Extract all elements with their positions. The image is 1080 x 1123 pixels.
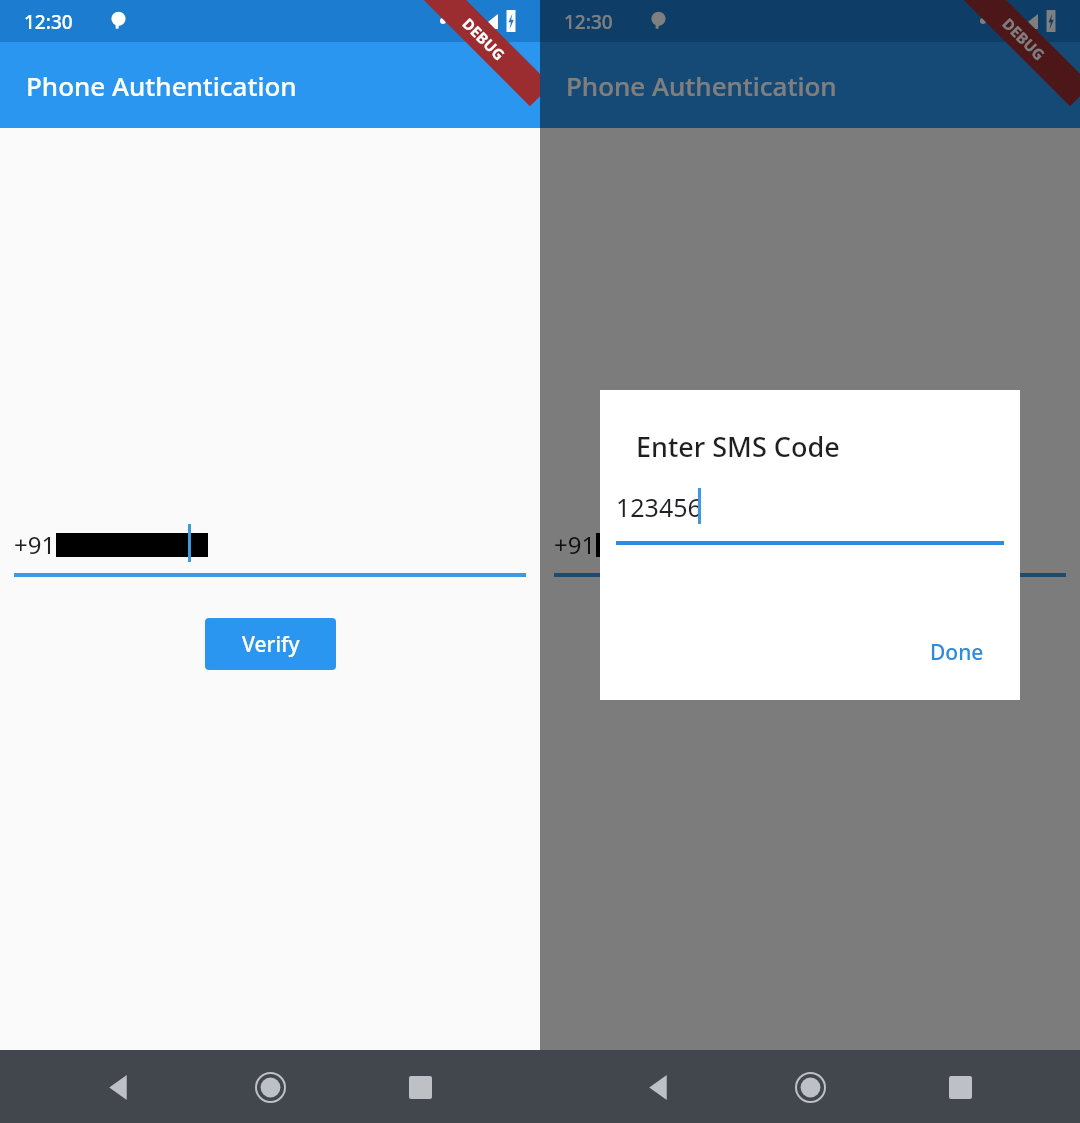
staticText: DEBUG <box>998 13 1049 64</box>
staticText: 12:30 <box>24 9 73 35</box>
button[interactable]: Phone Authentication <box>0 42 540 128</box>
button[interactable]: Home <box>780 1057 840 1117</box>
button[interactable]: Recents <box>930 1057 990 1117</box>
button[interactable]: Phone Authentication <box>540 42 1080 128</box>
button[interactable]: Recents <box>390 1057 450 1117</box>
staticText: Phone Authentication <box>26 68 297 103</box>
staticText: Verify <box>242 630 300 659</box>
button[interactable]: +91 <box>540 524 1080 584</box>
staticText: 123456 <box>616 490 702 524</box>
staticText: DEBUG <box>458 13 509 64</box>
button[interactable]: Done <box>910 630 1004 674</box>
button[interactable]: Back <box>630 1057 690 1117</box>
button[interactable]: Home <box>240 1057 300 1117</box>
button[interactable]: +91 <box>0 524 540 584</box>
staticText: Enter SMS Code <box>636 428 840 465</box>
staticText: LTE <box>457 14 476 29</box>
staticText: +91 <box>554 528 596 561</box>
staticText: +91 <box>14 528 56 561</box>
button[interactable]: Verify <box>205 618 336 670</box>
button[interactable]: 123456 <box>616 488 1004 550</box>
staticText: Phone Authentication <box>566 68 837 103</box>
staticText: 12:30 <box>564 9 613 35</box>
staticText: Done <box>930 638 984 667</box>
staticText: LTE <box>997 14 1016 29</box>
button[interactable]: Back <box>90 1057 150 1117</box>
